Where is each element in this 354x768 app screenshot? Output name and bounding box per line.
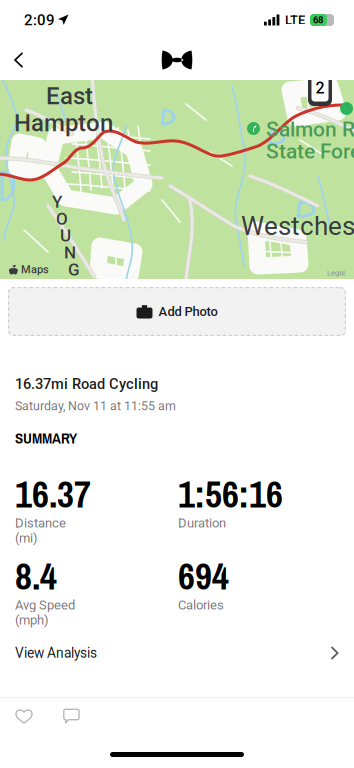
staticText: Duration [178, 515, 226, 531]
button[interactable]: Back [0, 40, 60, 80]
staticText: Add Photo [158, 304, 217, 319]
staticText: G [52, 260, 80, 280]
staticText: (mph) [15, 612, 49, 628]
staticText: Legal [327, 268, 345, 277]
staticText: 694 [178, 551, 229, 601]
staticText: State Fore [266, 139, 354, 164]
staticText: N [52, 243, 76, 263]
staticText: Hampton [14, 109, 113, 137]
staticText: East [46, 82, 93, 110]
staticText: U [52, 226, 71, 246]
staticText: LTE [285, 12, 305, 28]
staticText: (mi) [15, 530, 38, 546]
staticText: View Analysis [15, 645, 97, 661]
staticText: Westches [241, 211, 354, 241]
staticText: Calories [178, 597, 224, 613]
button[interactable]: Comment [55, 700, 88, 731]
staticText: Salmon Ri [266, 117, 354, 142]
staticText: Y [52, 192, 62, 212]
button[interactable]: Add Photo [0, 279, 354, 336]
button[interactable]: View Analysis [0, 631, 354, 675]
staticText: Saturday, Nov 11 at 11:55 am [15, 399, 176, 413]
staticText: SUMMARY [15, 428, 77, 448]
staticText: 2 [315, 79, 324, 97]
staticText: 16.37mi Road Cycling [15, 375, 158, 392]
staticText: O [52, 209, 68, 229]
staticText: 68 [313, 14, 323, 25]
staticText: 16.37 [15, 469, 91, 519]
staticText: 8.4 [15, 551, 57, 601]
staticText: Maps [21, 263, 49, 276]
staticText: Avg Speed [15, 597, 75, 613]
staticText: 2:09 [24, 11, 55, 29]
button[interactable]: Like [7, 700, 41, 732]
staticText: 1:56:16 [178, 469, 283, 519]
staticText: Distance [15, 515, 66, 531]
